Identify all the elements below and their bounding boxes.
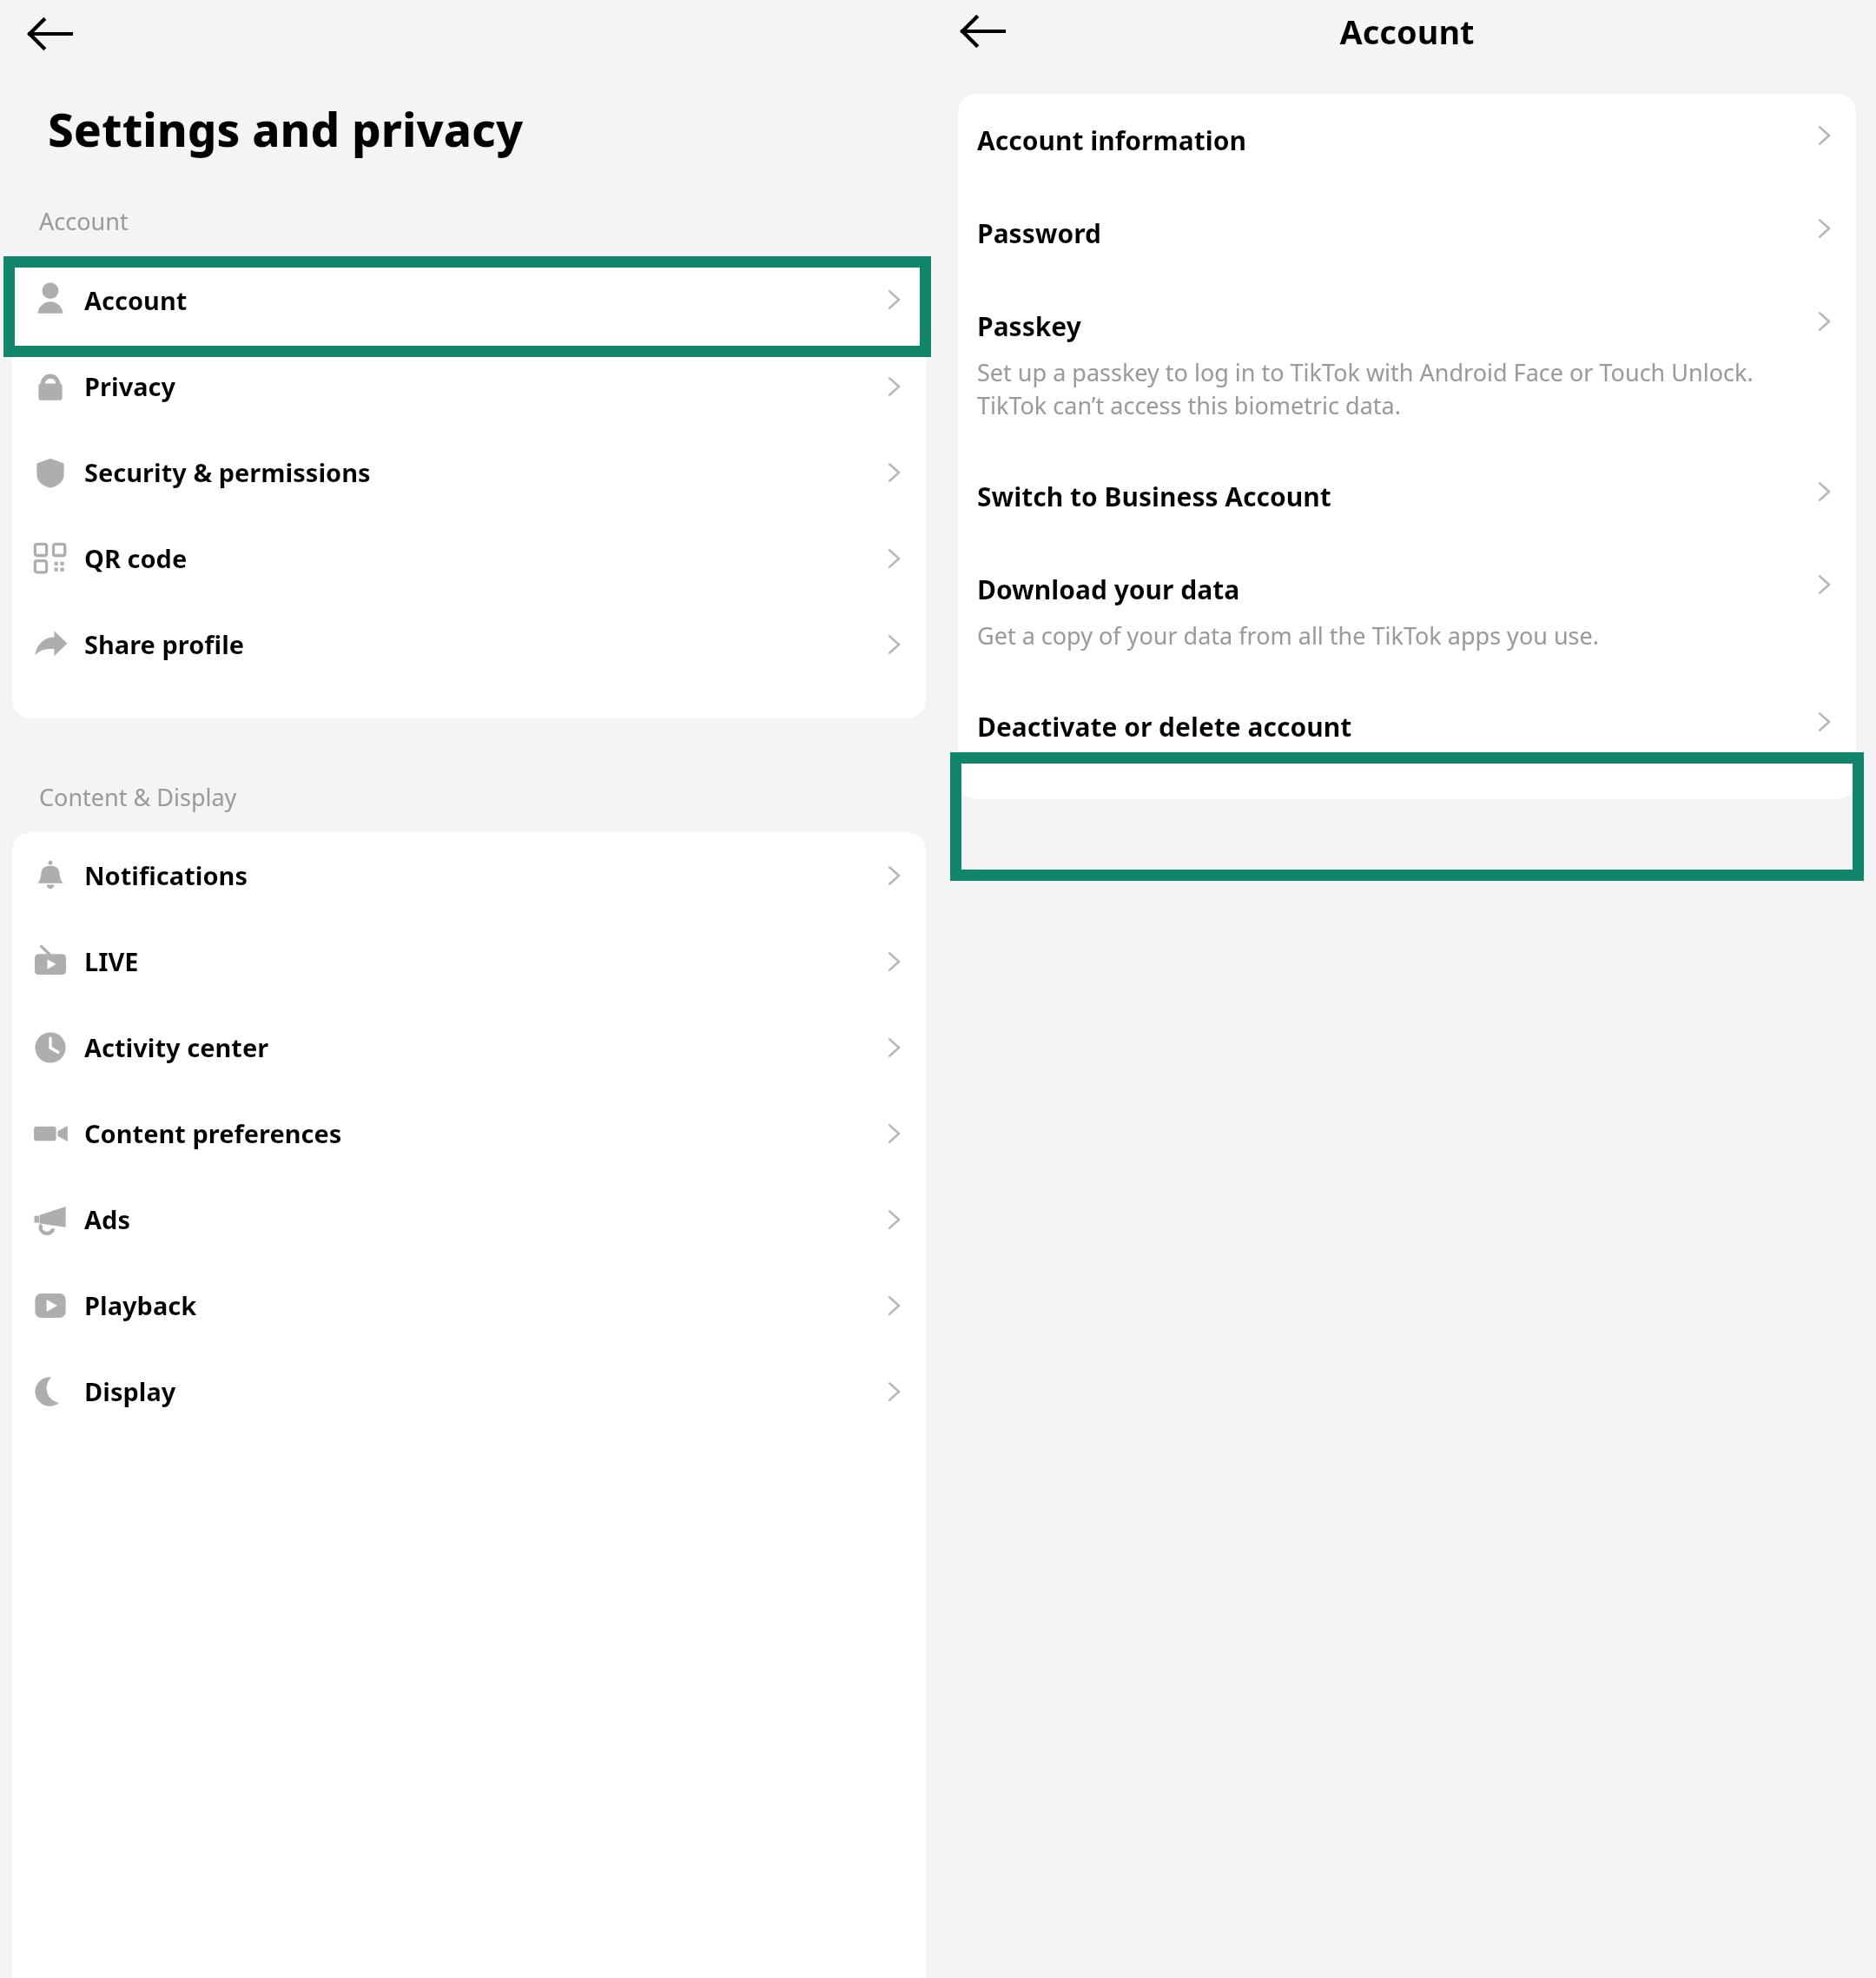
button[interactable]: Account <box>12 256 926 343</box>
button[interactable] <box>950 752 1864 881</box>
button[interactable]: Playback <box>12 1262 926 1348</box>
button[interactable]: Back <box>957 6 1007 56</box>
button[interactable]: Back <box>24 9 75 59</box>
button[interactable]: Content preferences <box>12 1090 926 1176</box>
staticText: Deactivate or delete account <box>977 709 1352 744</box>
staticText: Content & Display <box>39 781 237 813</box>
staticText: Privacy <box>84 369 176 403</box>
button[interactable]: Notifications <box>12 832 926 918</box>
staticText: Notifications <box>84 858 248 892</box>
staticText: Playback <box>84 1288 197 1322</box>
staticText: Passkey <box>977 308 1081 344</box>
staticText: Switch to Business Account <box>977 479 1331 514</box>
button[interactable]: Privacy <box>12 343 926 429</box>
staticText: Content preferences <box>84 1116 342 1150</box>
staticText: Activity center <box>84 1030 269 1064</box>
staticText: Download your data <box>977 572 1240 607</box>
button[interactable]: Passkey <box>958 280 1856 450</box>
button[interactable]: Security & permissions <box>12 429 926 515</box>
staticText: Account information <box>977 122 1246 158</box>
button[interactable]: Deactivate or delete account <box>958 680 1856 773</box>
staticText: Account <box>39 205 129 237</box>
staticText: Account <box>84 283 188 317</box>
staticText: Get a copy of your data from all the Tik… <box>977 619 1600 652</box>
staticText: Set up a passkey to log in to TikTok wit… <box>977 356 1797 421</box>
staticText: Security & permissions <box>84 455 371 489</box>
button[interactable]: Ads <box>12 1176 926 1262</box>
button[interactable]: Account information <box>958 94 1856 187</box>
button[interactable]: Download your data <box>958 543 1856 680</box>
staticText: Password <box>977 215 1101 251</box>
staticText: Share profile <box>84 627 245 661</box>
staticText: Account <box>1339 9 1475 54</box>
staticText: Ads <box>84 1202 130 1236</box>
button[interactable]: Activity center <box>12 1004 926 1090</box>
button[interactable]: Share profile <box>12 601 926 687</box>
button[interactable]: Password <box>958 187 1856 280</box>
staticText: Display <box>84 1374 176 1408</box>
button[interactable]: Switch to Business Account <box>958 450 1856 543</box>
button[interactable]: QR code <box>12 515 926 601</box>
button[interactable]: LIVE <box>12 918 926 1004</box>
staticText: QR code <box>84 541 188 575</box>
staticText: Settings and privacy <box>48 97 524 160</box>
button[interactable] <box>3 256 931 357</box>
button[interactable]: Display <box>12 1348 926 1434</box>
staticText: LIVE <box>84 944 139 978</box>
